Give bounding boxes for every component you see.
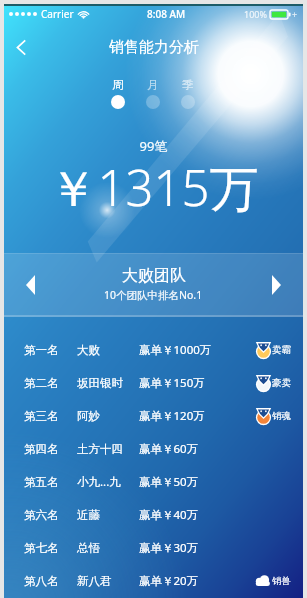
staticText: 100% [244, 8, 267, 20]
staticText: 第五名 [24, 475, 59, 489]
staticText: 第八名 [24, 574, 59, 588]
staticText: 季 [182, 78, 194, 92]
button[interactable]: 第六名 [4, 498, 303, 531]
button[interactable]: Previous team [4, 253, 303, 317]
staticText: 10个团队中排名No.1 [104, 288, 203, 302]
button[interactable]: 第一名 [4, 333, 303, 366]
button[interactable]: Previous team [19, 274, 41, 296]
staticText: 坂田银时 [77, 376, 123, 390]
staticText: 8:08 AM [147, 7, 186, 21]
button[interactable]: 第八名 [4, 564, 303, 597]
staticText: 99笔 [4, 137, 303, 155]
button[interactable]: 第三名 [4, 399, 303, 432]
button[interactable]: 季 [176, 77, 200, 110]
staticText: 销售能力分析 [109, 38, 199, 57]
staticText: 小九...九 [77, 474, 121, 490]
staticText: 总悟 [77, 541, 100, 555]
staticText: + [292, 8, 298, 20]
button[interactable]: 周 [106, 77, 130, 110]
staticText: 赢单￥120万 [139, 408, 205, 424]
staticText: 卖霸 [272, 344, 291, 356]
button[interactable]: 第二名 [4, 366, 303, 399]
staticText: 阿妙 [77, 409, 100, 423]
staticText: 新八君 [77, 574, 112, 588]
staticText: 月 [147, 78, 159, 92]
staticText: 大败团队 [122, 266, 186, 286]
staticText: 第六名 [24, 508, 59, 522]
staticText: Carrier [41, 7, 74, 21]
staticText: 第二名 [24, 376, 59, 390]
staticText: 赢单￥40万 [139, 507, 199, 523]
staticText: 第四名 [24, 442, 59, 456]
staticText: ￥1315万 [4, 154, 303, 221]
staticText: 第七名 [24, 541, 59, 555]
staticText: 赢单￥30万 [139, 540, 199, 556]
button[interactable]: 月 [141, 77, 165, 110]
staticText: 赢单￥20万 [139, 573, 199, 589]
staticText: 近藤 [77, 508, 100, 522]
staticText: 销兽 [272, 575, 291, 587]
staticText: 赢单￥50万 [139, 474, 199, 490]
button[interactable]: 第四名 [4, 432, 303, 465]
button[interactable]: 第七名 [4, 531, 303, 564]
staticText: 周 [112, 78, 124, 92]
staticText: 赢单￥150万 [139, 375, 205, 391]
button[interactable]: Back [4, 30, 38, 64]
staticText: 第一名 [24, 343, 59, 357]
staticText: 赢单￥60万 [139, 441, 199, 457]
staticText: 大败 [77, 343, 100, 357]
staticText: 销魂 [272, 410, 291, 422]
staticText: 赢单￥1000万 [139, 342, 212, 358]
staticText: 土方十四 [77, 442, 123, 456]
staticText: 豪卖 [272, 377, 291, 389]
staticText: 第三名 [24, 409, 59, 423]
button[interactable]: 第五名 [4, 465, 303, 498]
button[interactable]: Next team [265, 274, 287, 296]
